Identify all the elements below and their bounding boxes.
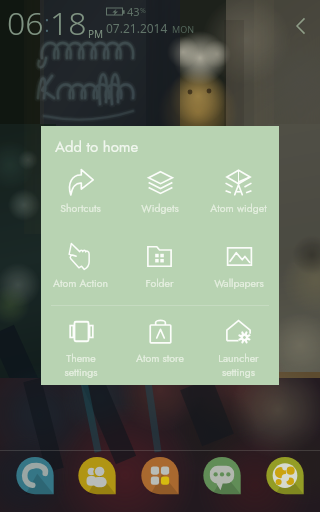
- staticText: :: [44, 6, 50, 39]
- staticText: Folder: [145, 276, 174, 291]
- staticText: Shortcuts: [60, 201, 101, 216]
- button[interactable]: Launcher settings: [199, 309, 278, 384]
- staticText: Atom Action: [53, 276, 108, 291]
- button[interactable]: Browser: [264, 455, 306, 499]
- staticText: %: [140, 6, 146, 16]
- button[interactable]: Previous page: [293, 16, 309, 36]
- button[interactable]: Phone: [14, 455, 56, 499]
- button[interactable]: Messages: [201, 455, 243, 499]
- staticText: Atom widget: [210, 201, 267, 216]
- staticText: 06: [7, 1, 44, 45]
- staticText: Launcher settings: [218, 351, 259, 380]
- button[interactable]: Atom store: [120, 309, 199, 384]
- button[interactable]: Atom Action: [41, 234, 120, 309]
- staticText: Wallpapers: [214, 276, 264, 291]
- staticText: Widgets: [141, 201, 179, 216]
- staticText: MON: [172, 23, 195, 35]
- button[interactable]: All apps: [139, 455, 181, 499]
- button[interactable]: Widgets: [120, 159, 199, 234]
- staticText: 43: [127, 4, 140, 19]
- staticText: Atom store: [136, 351, 184, 366]
- staticText: Add to home: [55, 136, 139, 158]
- staticText: PM: [88, 27, 104, 41]
- button[interactable]: Folder: [120, 234, 199, 309]
- staticText: Theme settings: [64, 351, 98, 380]
- button[interactable]: Shortcuts: [41, 159, 120, 234]
- button[interactable]: Wallpapers: [199, 234, 278, 309]
- button[interactable]: Atom widget: [199, 159, 278, 234]
- staticText: 18: [50, 1, 87, 45]
- button[interactable]: Theme settings: [41, 309, 120, 384]
- staticText: 07.21.2014: [106, 20, 168, 36]
- button[interactable]: Contacts: [76, 455, 118, 499]
